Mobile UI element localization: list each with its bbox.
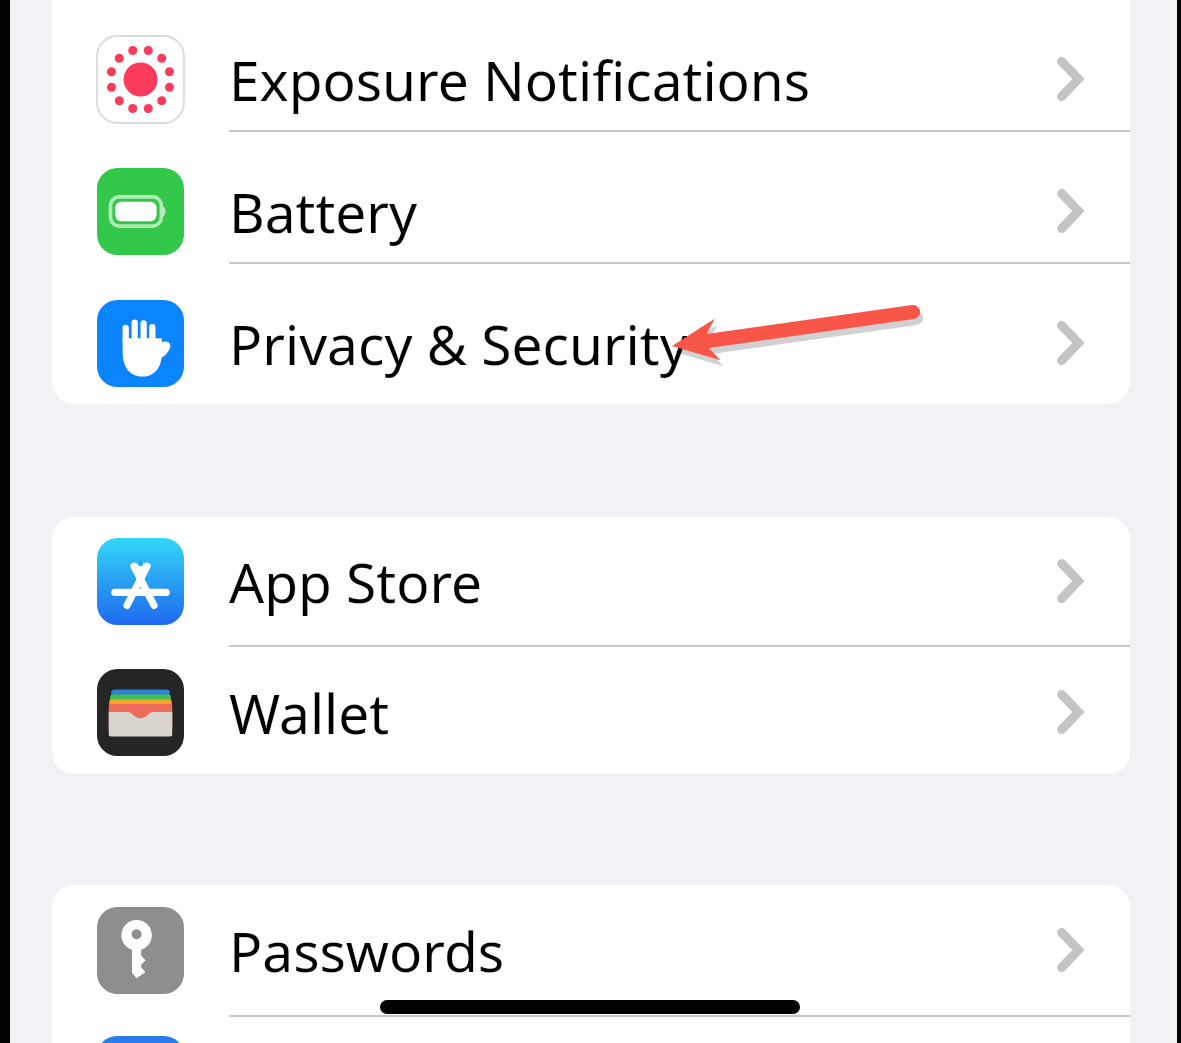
other: App Store [97, 538, 184, 625]
other: Privacy and Security [97, 300, 184, 387]
other: Wallet [97, 669, 184, 756]
staticText: App Store [229, 544, 483, 619]
staticText: Wallet [229, 675, 390, 750]
other: Exposure Notifications [97, 36, 184, 123]
staticText: Exposure Notifications [229, 42, 811, 117]
button[interactable]: Battery [52, 145, 1130, 277]
staticText: Battery [229, 174, 418, 249]
button[interactable]: Wallet [52, 646, 1130, 778]
button[interactable]: Privacy and Security [52, 277, 1130, 409]
other: Battery [97, 168, 184, 255]
button[interactable]: Passwords [52, 884, 1130, 1016]
staticText: Privacy & Security [229, 306, 688, 381]
button[interactable]: Exposure Notifications [52, 13, 1130, 145]
button[interactable]: App Store [52, 515, 1130, 647]
staticText: Passwords [229, 913, 505, 988]
other: Passwords [97, 907, 184, 994]
